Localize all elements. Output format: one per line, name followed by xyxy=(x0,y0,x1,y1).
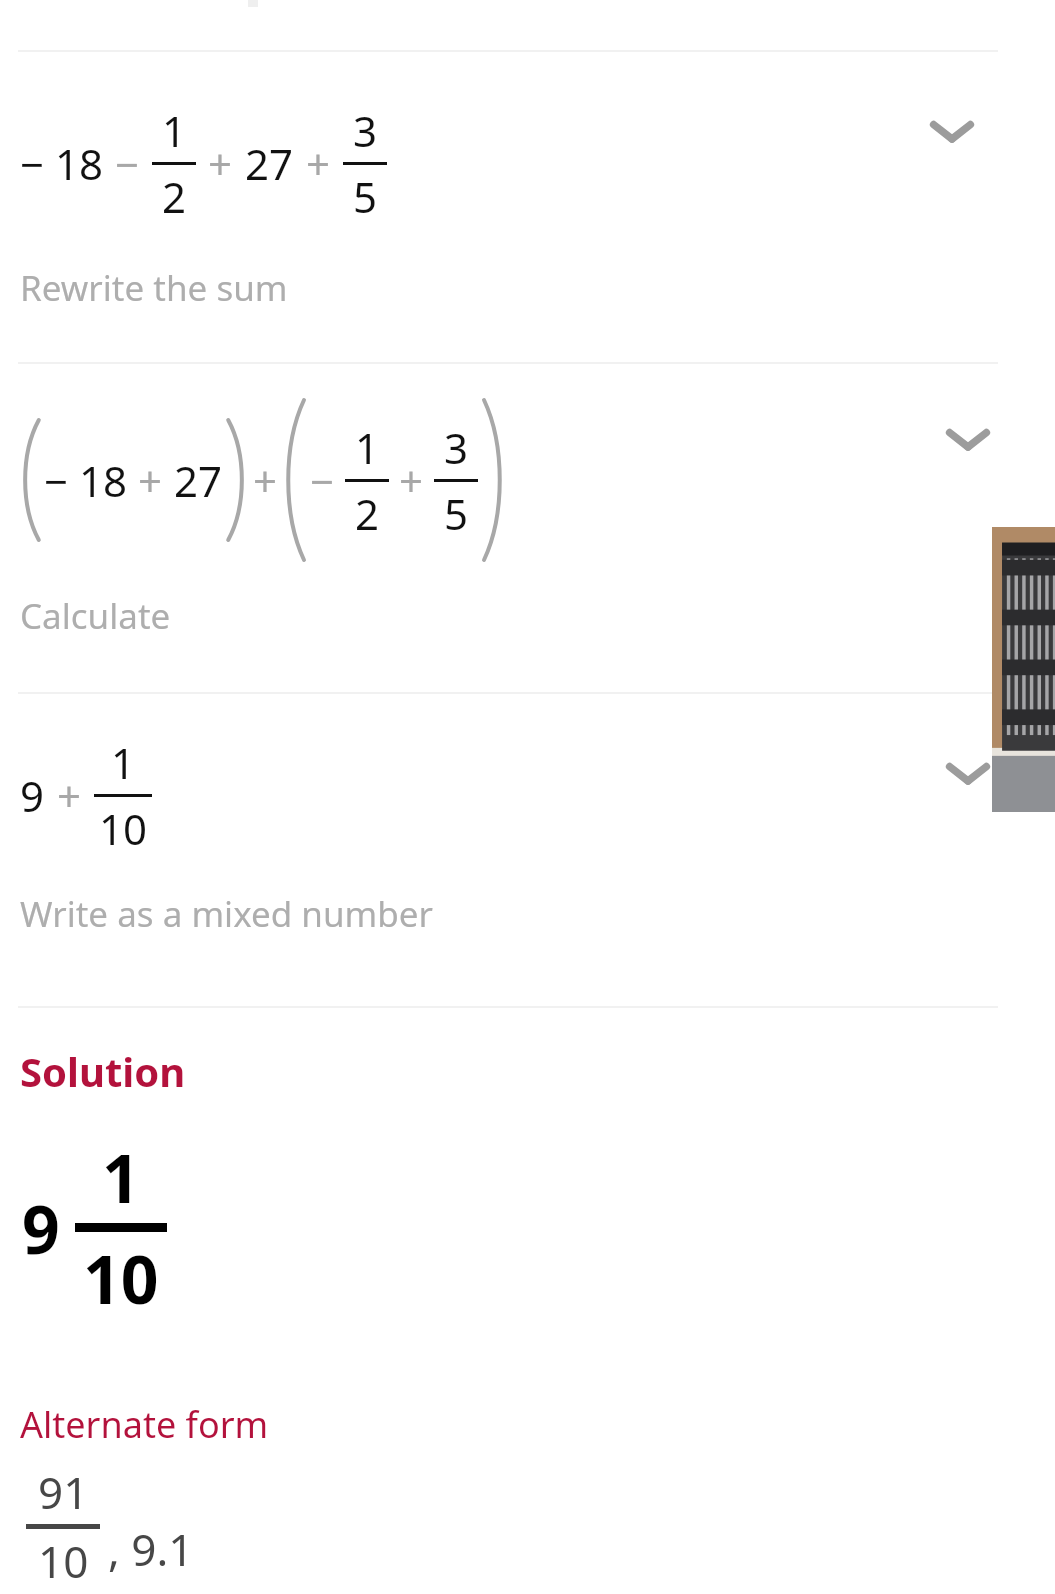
staticText: 1 xyxy=(162,102,187,159)
staticText: 91 xyxy=(38,1462,89,1522)
button[interactable]: Alternate form xyxy=(20,1400,269,1449)
button[interactable]: Collapse step xyxy=(916,94,988,166)
staticText: 5 xyxy=(444,485,469,542)
staticText: 3 xyxy=(353,102,378,159)
staticText: 1 xyxy=(111,734,136,791)
staticText: − 18 xyxy=(44,452,127,509)
staticText: 3 xyxy=(444,419,469,476)
staticText: 9 xyxy=(20,767,45,824)
staticText: 27 xyxy=(245,135,294,192)
staticText: 5 xyxy=(353,168,378,225)
staticText: 10 xyxy=(83,1233,159,1323)
staticText: 1 xyxy=(102,1132,140,1222)
button[interactable]: − 18 xyxy=(0,364,1055,692)
staticText: + xyxy=(306,135,331,192)
staticText: 27 xyxy=(174,452,223,509)
staticText: − 18 xyxy=(20,135,103,192)
staticText: + xyxy=(208,135,233,192)
staticText: , 9.1 xyxy=(108,1519,194,1579)
button[interactable]: Collapse step xyxy=(932,736,1004,808)
staticText: − xyxy=(310,452,335,509)
staticText: 2 xyxy=(355,485,380,542)
staticText: 10 xyxy=(38,1531,89,1591)
button[interactable]: − 18 xyxy=(0,52,1055,362)
staticText: 1 xyxy=(355,419,380,476)
staticText: Rewrite the sum xyxy=(20,264,288,312)
staticText: + xyxy=(399,452,424,509)
staticText: Write as a mixed number xyxy=(20,890,434,938)
staticText: 9 xyxy=(22,1183,60,1273)
staticText: + xyxy=(253,452,278,509)
staticText: 10 xyxy=(99,800,148,857)
staticText: + xyxy=(57,767,82,824)
staticText: 2 xyxy=(162,168,187,225)
button[interactable]: Solution xyxy=(20,1044,186,1098)
staticText: + xyxy=(138,452,163,509)
staticText: − xyxy=(115,135,140,192)
button[interactable]: 9 xyxy=(0,694,1055,1006)
staticText: Calculate xyxy=(20,592,171,640)
button[interactable]: Collapse step xyxy=(932,402,1004,474)
